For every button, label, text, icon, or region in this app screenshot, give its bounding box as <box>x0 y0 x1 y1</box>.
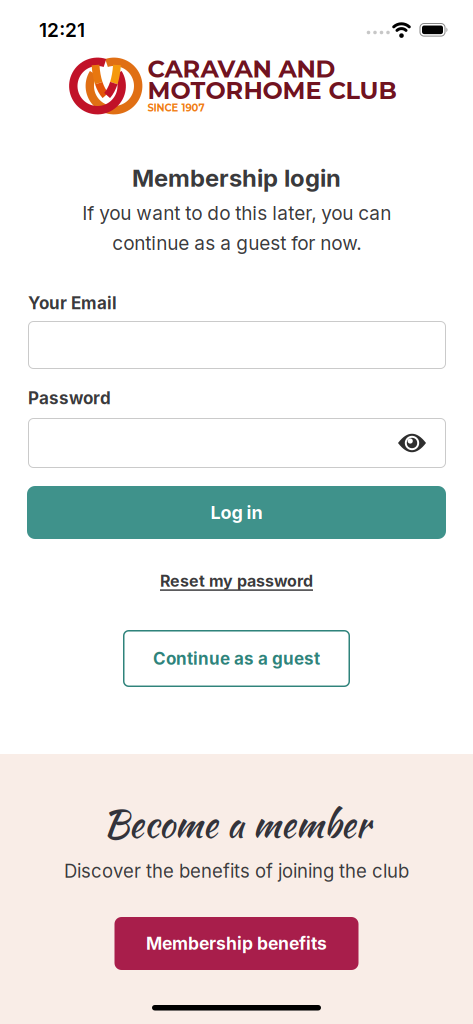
button[interactable]: Log in <box>0 486 473 539</box>
staticText: Membership benefits <box>146 933 327 954</box>
staticText: Your Email <box>28 293 117 313</box>
staticText: SINCE 1907 <box>147 102 204 114</box>
staticText: Membership login <box>132 163 341 192</box>
staticText: Discover the benefits of joining the clu… <box>64 860 409 882</box>
button[interactable]: Reset my password <box>160 569 313 593</box>
staticText: If you want to do this later, you can co… <box>82 201 391 254</box>
staticText: Log in <box>210 502 262 523</box>
staticText: CARAVAN AND <box>147 54 335 84</box>
staticText: MOTORHOME CLUB <box>147 76 396 105</box>
button[interactable]: Membership benefits <box>114 917 358 970</box>
staticText: Reset my password <box>160 571 313 591</box>
button[interactable]: Password <box>0 418 473 468</box>
staticText: Continue as a guest <box>153 648 320 669</box>
staticText: Password <box>28 388 111 408</box>
button[interactable]: Show password <box>398 434 426 452</box>
button[interactable]: Continue as a guest <box>123 630 350 687</box>
staticText: Become a member <box>102 797 370 851</box>
button[interactable]: Your Email <box>0 321 473 369</box>
staticText: 12:21 <box>39 18 85 41</box>
